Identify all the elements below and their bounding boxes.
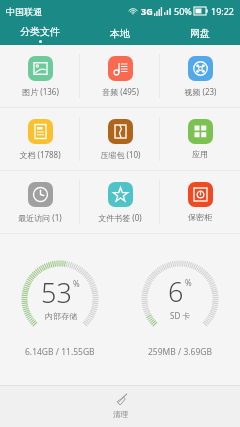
staticText: 53 (41, 274, 72, 311)
staticText: 网盘 (190, 27, 210, 40)
staticText: 清理 (113, 410, 128, 419)
button[interactable]: 文件书签 (0) (80, 171, 160, 233)
button[interactable]: 音频 (495) (80, 45, 160, 107)
button[interactable]: 分类文件 (0, 22, 80, 45)
staticText: 6.14GB / 11.55GB (25, 346, 95, 358)
staticText: 本地 (110, 27, 130, 40)
staticText: 内部存储 (45, 311, 77, 321)
staticText: % (73, 278, 80, 289)
button[interactable]: 图片 (136) (0, 45, 80, 107)
button[interactable]: 网盘 (160, 22, 240, 45)
button[interactable]: 压缩包 (10) (80, 108, 160, 170)
button[interactable]: 文档 (1788) (0, 108, 80, 170)
staticText: 259MB / 3.69GB (148, 346, 212, 358)
staticText: 应用 (192, 149, 208, 159)
button[interactable]: 6 (120, 234, 240, 382)
staticText: % (185, 277, 192, 288)
staticText: 文件书签 (0) (98, 212, 142, 223)
staticText: 最近访问 (1) (18, 212, 62, 223)
button[interactable]: 清理 (99, 390, 142, 422)
button[interactable]: 应用 (160, 108, 240, 170)
staticText: 6 (168, 273, 184, 310)
staticText: 3G (141, 5, 153, 17)
button[interactable]: 保密柜 (160, 171, 240, 233)
staticText: 中国联通 (6, 6, 42, 17)
staticText: 保密柜 (188, 212, 212, 222)
staticText: 视频 (23) (184, 86, 217, 97)
staticText: 文档 (1788) (19, 149, 61, 160)
staticText: 50% (174, 5, 192, 17)
staticText: 压缩包 (10) (100, 149, 141, 160)
button[interactable]: 视频 (23) (160, 45, 240, 107)
staticText: 图片 (136) (22, 86, 59, 97)
staticText: 分类文件 (20, 25, 60, 38)
staticText: SD 卡 (170, 310, 191, 321)
button[interactable]: 最近访问 (1) (0, 171, 80, 233)
staticText: 19:22 (211, 5, 235, 17)
button[interactable]: 53 (0, 234, 120, 382)
staticText: 音频 (495) (102, 86, 139, 97)
button[interactable]: 本地 (80, 22, 160, 45)
